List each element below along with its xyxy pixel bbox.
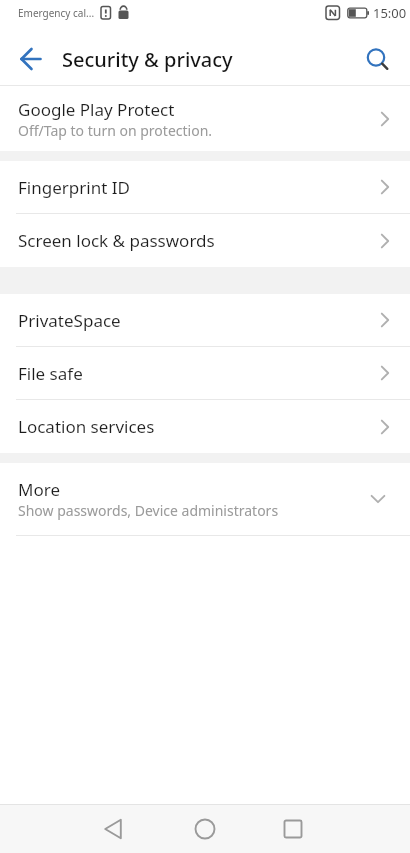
button[interactable] (19, 47, 43, 71)
staticText: Location services (18, 415, 155, 438)
button[interactable] (136, 805, 273, 853)
button[interactable] (273, 805, 410, 853)
button[interactable]: Google Play Protect (0, 86, 410, 151)
staticText: Google Play Protect (18, 98, 175, 121)
button[interactable]: More (0, 463, 410, 535)
staticText: Emergency cal... (18, 6, 95, 20)
staticText: Screen lock & passwords (18, 229, 215, 252)
button[interactable]: File safe (0, 347, 410, 399)
staticText: PrivateSpace (18, 309, 121, 332)
staticText: Fingerprint ID (18, 176, 130, 199)
button[interactable]: Location services (0, 400, 410, 453)
staticText: More (18, 478, 60, 501)
button[interactable]: Screen lock & passwords (0, 214, 410, 267)
staticText: Security & privacy (62, 46, 233, 73)
button[interactable]: Fingerprint ID (0, 161, 410, 213)
button[interactable] (365, 46, 391, 72)
staticText: Off/Tap to turn on protection. (18, 121, 213, 140)
button[interactable] (0, 805, 136, 853)
staticText: File safe (18, 362, 83, 385)
staticText: 15:00 (373, 4, 407, 22)
button[interactable]: PrivateSpace (0, 294, 410, 346)
staticText: Show passwords, Device administrators (18, 501, 279, 520)
